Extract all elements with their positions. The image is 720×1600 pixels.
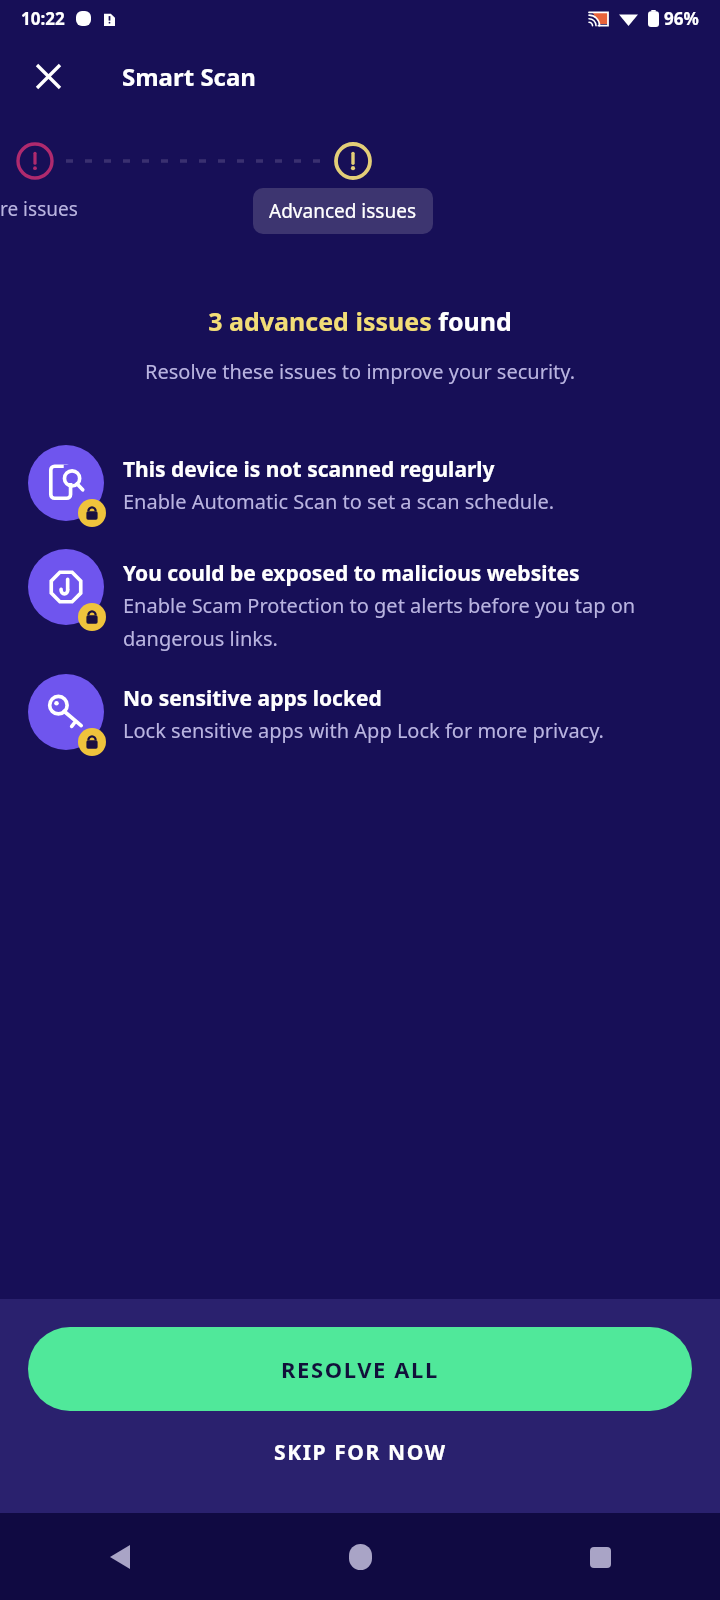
- staticText: Resolve these issues to improve your sec…: [145, 358, 576, 385]
- staticText: Advanced issues: [269, 198, 417, 224]
- button[interactable]: SKIP FOR NOW: [0, 1411, 720, 1493]
- staticText: Enable Scam Protection to get alerts bef…: [123, 592, 696, 652]
- button[interactable]: RESOLVE ALL: [28, 1327, 692, 1411]
- button[interactable]: You could be exposed to malicious websit…: [0, 549, 720, 652]
- button[interactable]: Advanced issues: [253, 188, 433, 234]
- button[interactable]: Home: [330, 1527, 390, 1587]
- button[interactable]: Back: [90, 1527, 150, 1587]
- staticText: You could be exposed to malicious websit…: [123, 559, 580, 588]
- button[interactable]: This device is not scanned regularly: [0, 445, 720, 527]
- staticText: 96%: [664, 7, 699, 30]
- staticText: 3 advanced issues found: [208, 304, 512, 338]
- button[interactable]: Recents: [570, 1527, 630, 1587]
- staticText: re issues: [0, 196, 78, 222]
- button[interactable]: No sensitive apps locked: [0, 674, 720, 756]
- staticText: RESOLVE ALL: [281, 1354, 439, 1384]
- staticText: SKIP FOR NOW: [274, 1438, 447, 1467]
- button[interactable]: Close: [24, 52, 72, 100]
- staticText: No sensitive apps locked: [123, 684, 382, 713]
- staticText: Smart Scan: [122, 60, 256, 93]
- staticText: 10:22: [21, 7, 65, 30]
- staticText: This device is not scanned regularly: [123, 455, 495, 484]
- staticText: Lock sensitive apps with App Lock for mo…: [123, 717, 604, 744]
- staticText: Enable Automatic Scan to set a scan sche…: [123, 488, 555, 515]
